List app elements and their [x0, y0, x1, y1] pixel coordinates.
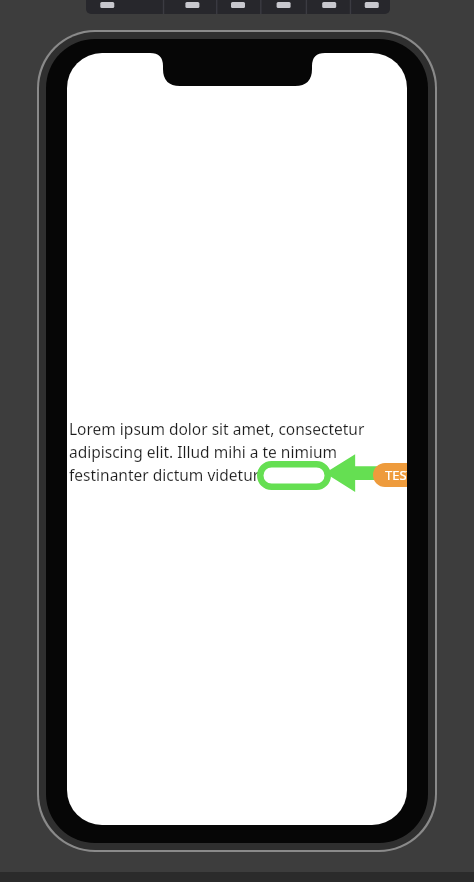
- button[interactable]: TEST: [373, 463, 407, 487]
- staticText: Lorem ipsum dolor sit amet, consectetur …: [69, 418, 375, 486]
- staticText: TEST: [385, 466, 407, 484]
- button[interactable]: Highlighted input field: [257, 461, 331, 490]
- other: Pointer arrow: [325, 450, 377, 492]
